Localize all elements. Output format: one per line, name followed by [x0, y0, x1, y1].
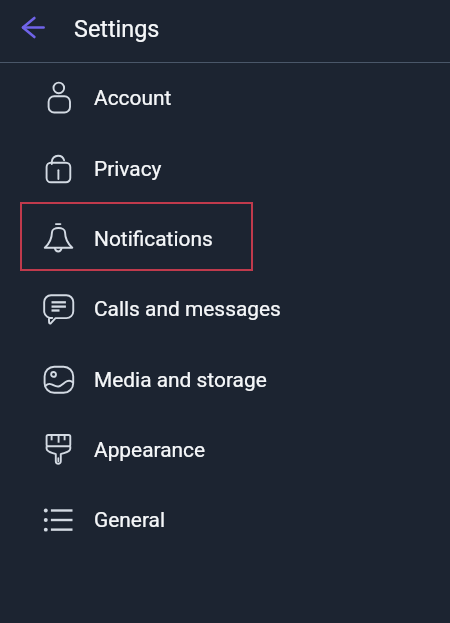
staticText: Media and storage: [94, 368, 267, 392]
button[interactable]: General: [0, 485, 450, 555]
staticText: General: [94, 508, 166, 532]
staticText: Notifications: [94, 227, 213, 251]
button[interactable]: Account: [0, 63, 450, 133]
staticText: Settings: [74, 15, 160, 42]
staticText: Privacy: [94, 157, 162, 181]
button[interactable]: Privacy: [0, 134, 450, 204]
button[interactable]: Appearance: [0, 415, 450, 485]
button[interactable]: Notifications: [0, 204, 450, 274]
staticText: Appearance: [94, 438, 206, 462]
button[interactable]: Calls and messages: [0, 274, 450, 344]
button[interactable]: Media and storage: [0, 345, 450, 415]
staticText: Account: [94, 86, 172, 110]
button[interactable]: Back: [16, 11, 49, 44]
staticText: Calls and messages: [94, 297, 281, 321]
